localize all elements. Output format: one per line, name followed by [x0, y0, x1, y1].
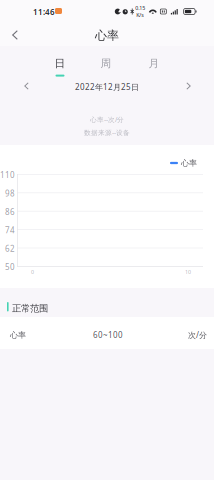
staticText: 10 — [185, 268, 191, 276]
button[interactable]: Back — [4, 25, 26, 45]
staticText: 日 — [54, 57, 65, 70]
staticText: 月 — [148, 57, 159, 70]
button[interactable]: Next day — [180, 79, 197, 93]
staticText: 2022年12月25日 — [75, 82, 139, 92]
staticText: 次/分 — [188, 330, 207, 340]
staticText: 11:46 — [33, 7, 55, 17]
staticText: 数据来源--设备 — [84, 128, 130, 137]
staticText: 110 — [0, 170, 15, 180]
button[interactable]: 日 — [46, 55, 74, 79]
staticText: 周 — [100, 57, 111, 70]
staticText: 86 — [5, 206, 15, 217]
staticText: 50 — [5, 262, 15, 272]
staticText: 0.15 — [135, 4, 145, 11]
button[interactable]: 周 — [92, 55, 120, 79]
button[interactable]: 月 — [140, 55, 168, 79]
staticText: 98 — [5, 188, 15, 199]
button[interactable]: Previous day — [18, 79, 35, 93]
staticText: 0 — [31, 268, 34, 276]
staticText: K/s — [136, 11, 144, 19]
staticText: 60~100 — [93, 330, 123, 340]
staticText: 心率--次/分 — [90, 115, 124, 124]
staticText: 心率 — [10, 330, 26, 340]
staticText: 心率 — [95, 28, 119, 43]
staticText: 74 — [5, 225, 15, 235]
staticText: 正常范围 — [12, 303, 48, 314]
staticText: 62 — [5, 243, 15, 254]
staticText: 心率 — [181, 158, 197, 168]
